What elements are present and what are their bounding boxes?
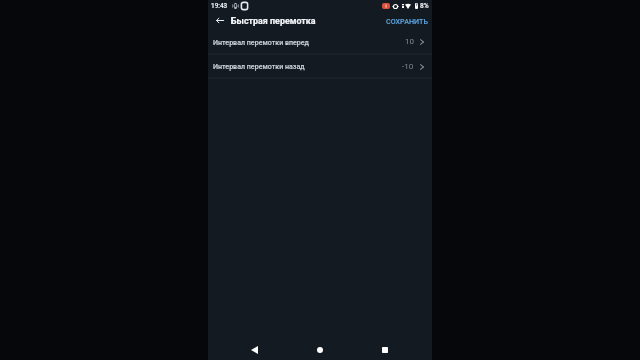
button[interactable]: Недавние приложения xyxy=(367,340,403,360)
staticText: СОХРАНИТЬ xyxy=(386,17,428,25)
staticText: Интервал перемотки назад xyxy=(213,62,305,70)
button[interactable]: Интервал перемотки вперед xyxy=(208,30,432,53)
staticText: Быстрая перемотка xyxy=(231,16,316,26)
staticText: -10 xyxy=(402,62,414,71)
button[interactable]: Главный экран xyxy=(302,340,338,360)
button[interactable]: Назад xyxy=(236,340,272,360)
staticText: 19:43 xyxy=(211,2,228,10)
staticText: 8% xyxy=(420,2,429,10)
staticText: 10 xyxy=(405,37,414,46)
button[interactable]: Назад xyxy=(212,12,228,28)
button[interactable]: Интервал перемотки назад xyxy=(208,55,432,77)
button[interactable]: СОХРАНИТЬ xyxy=(380,12,432,30)
staticText: Интервал перемотки вперед xyxy=(213,38,310,46)
